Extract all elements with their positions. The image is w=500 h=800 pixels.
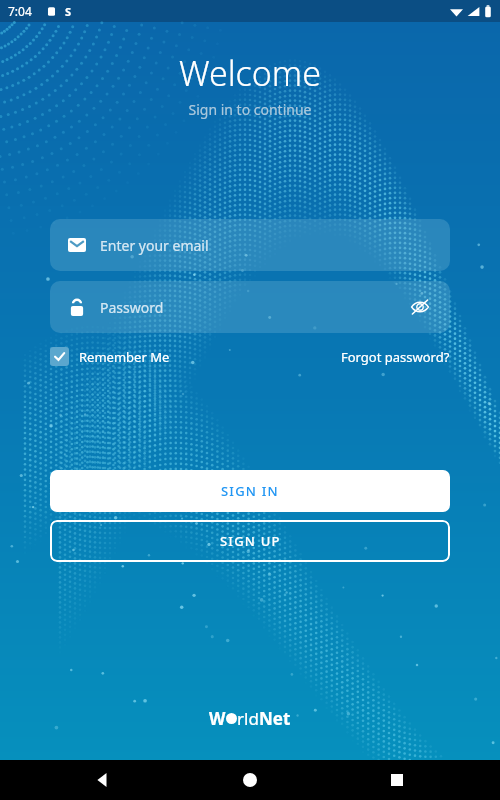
staticText: Welcome xyxy=(0,50,500,96)
button[interactable]: Back xyxy=(87,764,119,796)
button[interactable]: Password xyxy=(50,281,450,333)
staticText: Net xyxy=(259,707,291,730)
staticText: SIGN UP xyxy=(220,532,281,550)
button[interactable]: SIGN UP xyxy=(50,520,450,562)
staticText: S xyxy=(65,4,72,19)
staticText: Remember Me xyxy=(79,348,170,366)
staticText: rld xyxy=(237,707,259,730)
button[interactable]: SIGN IN xyxy=(50,470,450,512)
staticText: Password xyxy=(100,298,408,317)
staticText: SIGN IN xyxy=(221,482,279,500)
button[interactable]: Enter your email xyxy=(50,219,450,271)
button[interactable]: Home xyxy=(234,764,266,796)
staticText: W xyxy=(209,707,226,730)
staticText: Sign in to continue xyxy=(0,100,500,119)
button[interactable]: Recents xyxy=(381,764,413,796)
staticText: Forgot password? xyxy=(341,348,450,366)
button[interactable]: Remember Me xyxy=(50,347,174,366)
button[interactable]: Forgot password? xyxy=(341,348,450,366)
staticText: Enter your email xyxy=(100,236,209,255)
staticText: 7:04 xyxy=(8,3,32,19)
button[interactable]: Show password xyxy=(408,295,432,319)
